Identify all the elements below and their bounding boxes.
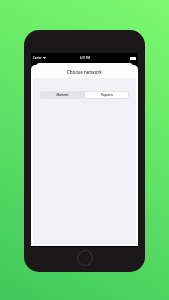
staticText: 6:31 PM	[80, 56, 90, 60]
staticText: Mainnet	[56, 93, 69, 97]
button[interactable]: Mainnet	[41, 92, 83, 98]
staticText: Ropsten	[101, 93, 113, 97]
button[interactable]: Home	[77, 250, 93, 266]
staticText: Carrier	[33, 56, 42, 60]
staticText: Choose network	[67, 69, 102, 75]
button[interactable]: Ropsten	[85, 92, 128, 98]
